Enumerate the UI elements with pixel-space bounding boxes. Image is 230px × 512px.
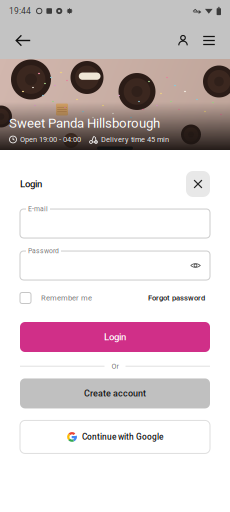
- staticText: Or: [111, 362, 118, 370]
- staticText: Open 19:00 - 04:00: [20, 135, 81, 144]
- button[interactable]: Menu: [196, 25, 222, 56]
- staticText: Sweet Panda Hillsborough: [9, 115, 160, 131]
- staticText: Create account: [84, 388, 146, 399]
- button[interactable]: Account: [170, 25, 196, 56]
- staticText: Password: [28, 247, 59, 255]
- button[interactable]: Create account: [20, 378, 210, 408]
- staticText: Forgot password: [148, 293, 205, 302]
- staticText: Login: [104, 331, 126, 343]
- staticText: Delivery time 45 min: [101, 135, 169, 144]
- staticText: Continue with Google: [82, 432, 163, 442]
- button[interactable]: Back: [8, 25, 38, 56]
- button[interactable]: Continue with Google: [20, 420, 210, 453]
- button[interactable]: Forgot password: [148, 293, 205, 302]
- staticText: Login: [20, 178, 42, 190]
- button[interactable]: Remember me: [20, 292, 92, 303]
- staticText: 19:44: [9, 6, 31, 16]
- staticText: E-mail: [28, 205, 48, 213]
- button[interactable]: Close: [186, 171, 210, 197]
- button[interactable]: Login: [20, 322, 210, 352]
- staticText: Remember me: [41, 293, 92, 302]
